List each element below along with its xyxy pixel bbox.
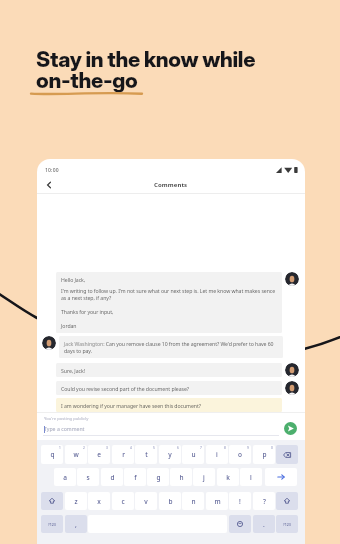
button[interactable]: Back [43, 179, 55, 191]
staticText: 0 [271, 446, 273, 450]
button[interactable]: m [206, 492, 228, 510]
staticText: Type a comment [44, 425, 85, 432]
staticText: Jack Washington: Can you remove clause 1… [64, 340, 278, 354]
staticText: n [191, 497, 196, 506]
button[interactable]: l [240, 468, 262, 486]
staticText: 8 [224, 446, 226, 450]
staticText: w [73, 450, 79, 459]
button[interactable] [276, 445, 298, 464]
staticText: e [97, 450, 101, 459]
staticText: 2 [83, 446, 85, 450]
staticText: 3 [106, 446, 108, 450]
button[interactable]: z [65, 492, 87, 510]
button[interactable]: k [217, 468, 239, 486]
staticText: j [203, 473, 205, 482]
staticText: You're posting publicly [44, 416, 89, 422]
button[interactable]: v [135, 492, 157, 510]
button[interactable]: ?123 [276, 515, 298, 533]
staticText: 5 [153, 446, 155, 450]
staticText: 10:00 [45, 167, 59, 174]
staticText: q [50, 450, 55, 459]
button[interactable]: , [65, 515, 87, 533]
button[interactable]: c [112, 492, 134, 510]
button[interactable]: s [77, 468, 99, 486]
staticText: 1 [59, 446, 61, 450]
staticText: s [86, 473, 90, 482]
staticText: I am wondering if your manager have seen… [61, 402, 201, 409]
staticText: Hello Jack, [61, 276, 86, 283]
staticText: Comments [154, 181, 188, 189]
staticText: Sure, Jack! [61, 367, 85, 374]
staticText: f [134, 473, 137, 482]
button[interactable]: x [88, 492, 110, 510]
staticText: ! [239, 497, 241, 506]
button[interactable]: . [253, 515, 275, 533]
button[interactable]: p [253, 445, 275, 464]
button[interactable]: b [159, 492, 181, 510]
button[interactable]: q [41, 445, 63, 464]
button[interactable]: u [182, 445, 204, 464]
staticText: m [214, 497, 221, 506]
staticText: l [250, 473, 252, 482]
button[interactable]: h [170, 468, 192, 486]
staticText: o [238, 450, 242, 459]
staticText: v [144, 497, 148, 506]
staticText: I'm writing to follow up. I'm not sure w… [61, 287, 277, 301]
button[interactable] [265, 468, 297, 486]
staticText: 9 [247, 446, 249, 450]
staticText: Jordan [61, 322, 77, 329]
staticText: h [179, 473, 184, 482]
button[interactable] [41, 492, 63, 510]
staticText: 7 [200, 446, 202, 450]
button[interactable]: w [65, 445, 87, 464]
staticText: a [63, 473, 67, 482]
button[interactable]: ! [229, 492, 251, 510]
button[interactable]: Send [284, 422, 297, 435]
button[interactable]: g [147, 468, 169, 486]
staticText: i [216, 450, 218, 459]
button[interactable]: r [112, 445, 134, 464]
staticText: 4 [130, 446, 132, 450]
button[interactable]: o [229, 445, 251, 464]
button[interactable]: ?123 [41, 515, 63, 533]
button[interactable]: j [193, 468, 215, 486]
staticText: c [121, 497, 125, 506]
staticText: d [110, 473, 115, 482]
staticText: Thanks for your input, [61, 308, 114, 315]
staticText: z [74, 497, 78, 506]
button[interactable] [276, 492, 298, 510]
staticText: ?123 [48, 522, 56, 527]
staticText: p [262, 450, 267, 459]
button[interactable]: d [101, 468, 123, 486]
staticText: u [191, 450, 196, 459]
button[interactable]: a [54, 468, 76, 486]
button[interactable]: e [88, 445, 110, 464]
staticText: t [145, 450, 148, 459]
staticText: b [168, 497, 173, 506]
button[interactable]: t [135, 445, 157, 464]
staticText: y [168, 450, 172, 459]
staticText: , [75, 520, 77, 529]
staticText: ?123 [283, 522, 291, 527]
button[interactable]: n [182, 492, 204, 510]
staticText: r [122, 450, 125, 459]
button[interactable]: f [124, 468, 146, 486]
staticText: x [97, 497, 101, 506]
staticText: Stay in the know while on-the-go [36, 46, 256, 93]
staticText: 6 [177, 446, 179, 450]
button[interactable]: i [206, 445, 228, 464]
button[interactable] [229, 515, 251, 533]
staticText: g [156, 473, 161, 482]
staticText: Could you revise second part of the docu… [61, 385, 189, 392]
button[interactable]: ? [253, 492, 275, 510]
staticText: k [226, 473, 230, 482]
button[interactable]: y [159, 445, 181, 464]
staticText: ? [263, 497, 266, 506]
staticText: . [263, 520, 265, 529]
